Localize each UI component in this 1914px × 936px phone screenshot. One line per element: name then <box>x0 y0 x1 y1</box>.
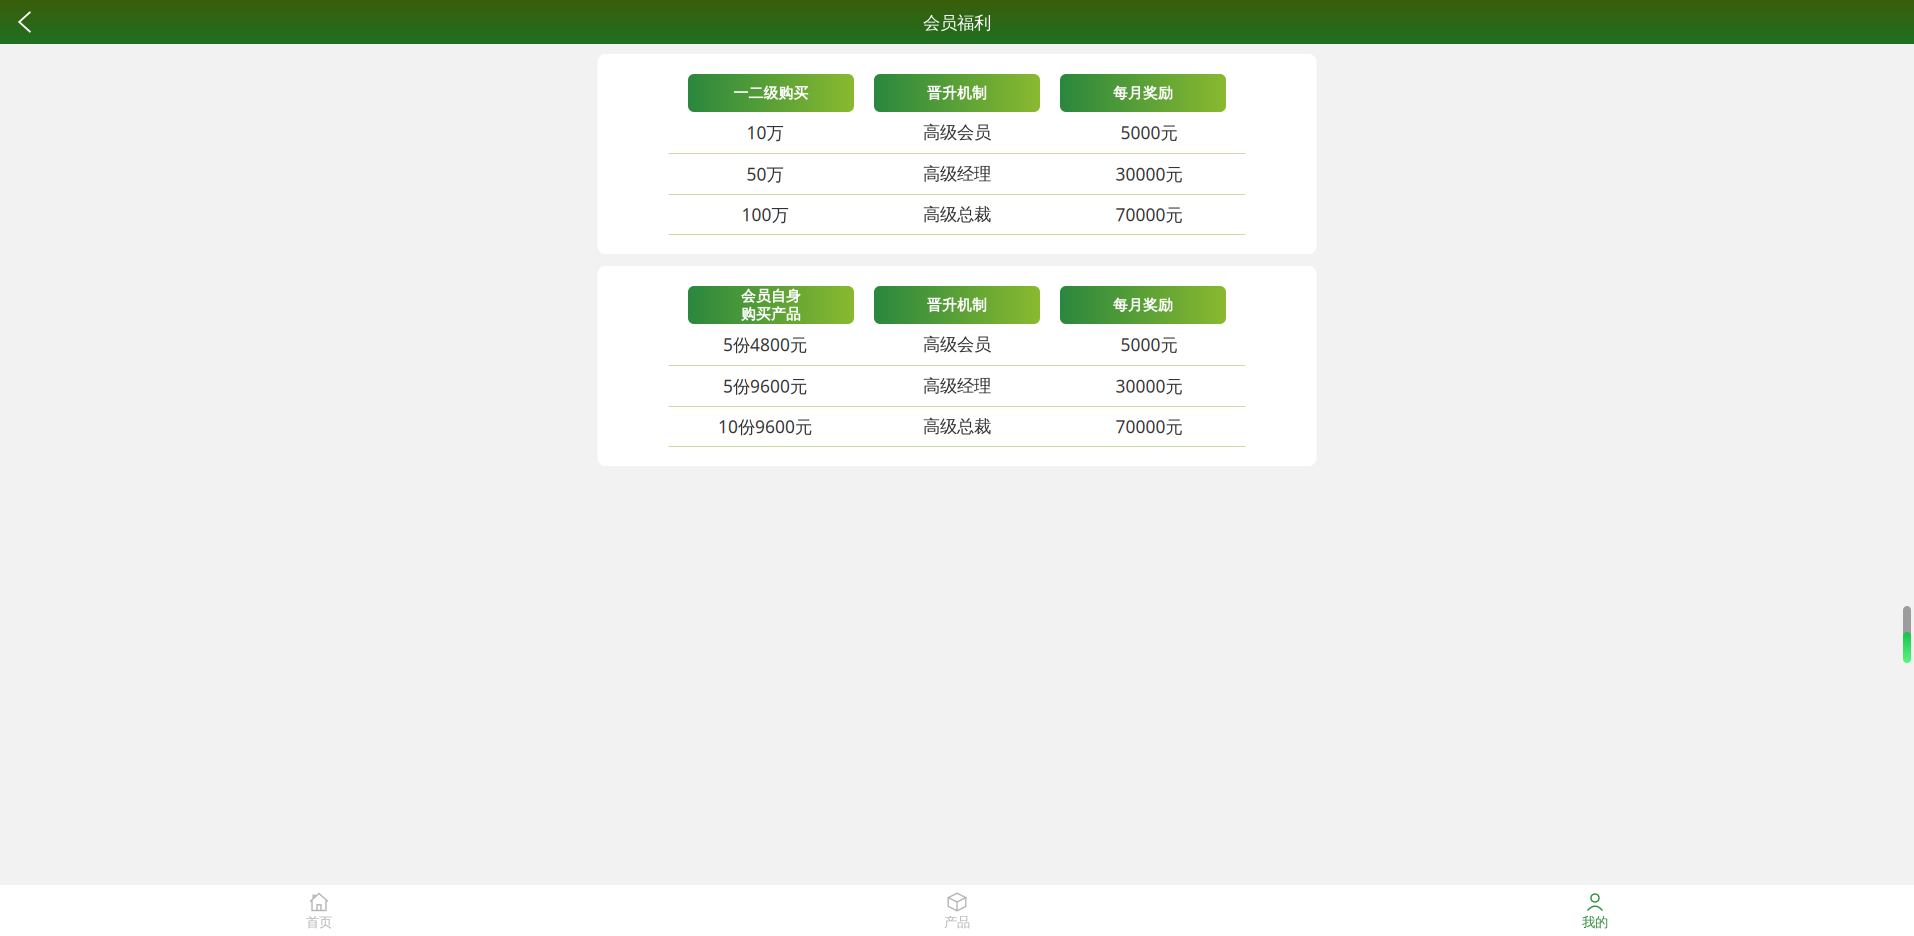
button[interactable]: Back <box>0 1 45 43</box>
staticText: 每月奖励 <box>1113 296 1173 314</box>
staticText: 高级总裁 <box>923 204 991 225</box>
staticText: 30000元 <box>1115 374 1182 397</box>
staticText: 30000元 <box>1115 162 1182 185</box>
staticText: 高级总裁 <box>923 416 991 437</box>
staticText: 每月奖励 <box>1113 84 1173 102</box>
staticText: 会员自身 <box>741 287 801 305</box>
button[interactable]: 晋升机制 <box>874 74 1040 112</box>
staticText: 首页 <box>306 914 332 930</box>
staticText: 10万 <box>746 121 783 144</box>
staticText: 一二级购买 <box>733 84 808 102</box>
staticText: 购买产品 <box>741 305 801 323</box>
button[interactable]: 首页 <box>0 885 638 936</box>
button[interactable]: 每月奖励 <box>1060 286 1226 324</box>
staticText: 5000元 <box>1120 121 1177 144</box>
button[interactable]: 会员自身 <box>688 286 854 324</box>
staticText: 5份4800元 <box>723 333 807 356</box>
button[interactable]: 每月奖励 <box>1060 74 1226 112</box>
staticText: 50万 <box>746 162 783 185</box>
staticText: 晋升机制 <box>927 84 987 102</box>
button[interactable]: 晋升机制 <box>874 286 1040 324</box>
staticText: 10份9600元 <box>718 415 812 438</box>
staticText: 产品 <box>944 914 970 930</box>
staticText: 晋升机制 <box>927 296 987 314</box>
staticText: 70000元 <box>1115 415 1182 438</box>
button[interactable]: 我的 <box>1276 885 1914 936</box>
staticText: 5份9600元 <box>723 374 807 397</box>
staticText: 高级经理 <box>923 163 991 185</box>
staticText: 我的 <box>1582 914 1608 930</box>
button[interactable]: 一二级购买 <box>688 74 854 112</box>
staticText: 会员福利 <box>923 12 991 34</box>
staticText: 高级会员 <box>923 122 991 143</box>
button[interactable]: 产品 <box>638 885 1276 936</box>
staticText: 100万 <box>741 203 788 226</box>
staticText: 5000元 <box>1120 333 1177 356</box>
staticText: 高级会员 <box>923 334 991 355</box>
staticText: 70000元 <box>1115 203 1182 226</box>
staticText: 高级经理 <box>923 375 991 397</box>
